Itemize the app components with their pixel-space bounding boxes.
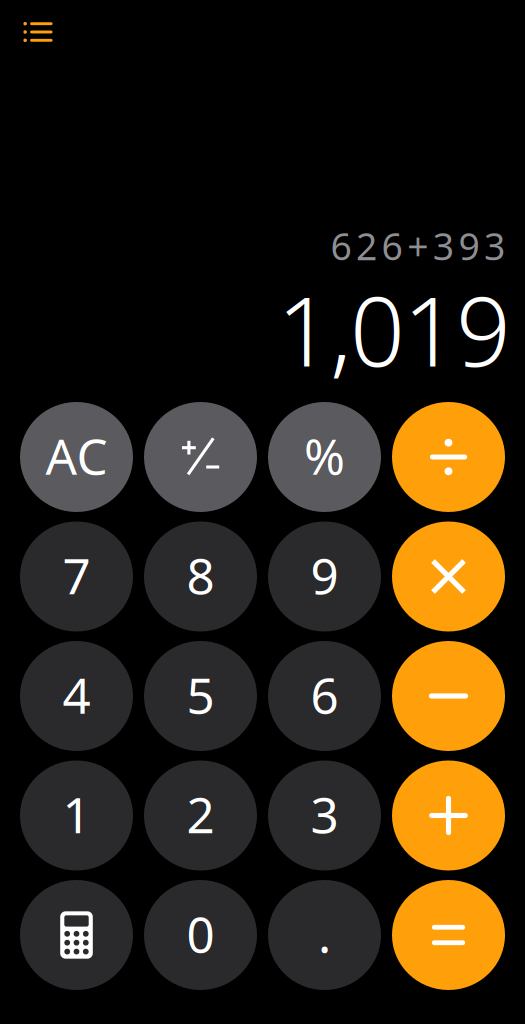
staticText: 1 xyxy=(62,781,90,847)
staticText: % xyxy=(304,423,345,488)
staticText: 2 xyxy=(356,221,377,270)
staticText: , xyxy=(330,265,352,393)
staticText: 3 xyxy=(310,781,338,847)
button[interactable]: Equals xyxy=(392,880,505,990)
staticText: 2 xyxy=(186,781,214,847)
button[interactable]: Divide xyxy=(392,402,505,512)
button[interactable]: . xyxy=(268,880,381,990)
button[interactable]: Plus xyxy=(392,760,505,870)
button[interactable]: 6 xyxy=(268,641,381,751)
button[interactable]: Minus xyxy=(392,641,505,751)
button[interactable]: AC xyxy=(20,402,133,512)
staticText: 3 xyxy=(484,221,505,270)
button[interactable]: 9 xyxy=(268,521,381,631)
staticText: 0 xyxy=(350,265,405,393)
button[interactable]: 8 xyxy=(144,521,257,631)
button[interactable]: % xyxy=(268,402,381,512)
staticText: 6 xyxy=(310,662,338,727)
button[interactable]: Multiply xyxy=(392,521,505,631)
button[interactable]: 0 xyxy=(144,880,257,990)
button[interactable]: 3 xyxy=(268,760,381,870)
button[interactable]: History xyxy=(20,16,56,48)
staticText: 7 xyxy=(62,542,90,608)
staticText: 1 xyxy=(403,265,458,393)
button[interactable]: 7 xyxy=(20,521,133,631)
staticText: + xyxy=(407,221,428,270)
button[interactable]: 2 xyxy=(144,760,257,870)
staticText: 9 xyxy=(456,265,511,393)
staticText: . xyxy=(318,901,331,966)
staticText: 6 xyxy=(330,221,351,270)
staticText: 8 xyxy=(186,542,214,608)
staticText: AC xyxy=(45,423,107,488)
button[interactable]: 5 xyxy=(144,641,257,751)
button[interactable]: 4 xyxy=(20,641,133,751)
staticText: 0 xyxy=(186,901,214,966)
staticText: 9 xyxy=(310,542,338,608)
staticText: 5 xyxy=(186,662,214,727)
staticText: 4 xyxy=(62,662,90,727)
staticText: 6 xyxy=(382,221,403,270)
button[interactable]: Calculator xyxy=(20,880,133,990)
button[interactable]: Toggle sign xyxy=(144,402,257,512)
button[interactable]: 1 xyxy=(20,760,133,870)
staticText: 9 xyxy=(458,221,479,270)
staticText: 1 xyxy=(277,265,332,393)
staticText: 3 xyxy=(433,221,454,270)
